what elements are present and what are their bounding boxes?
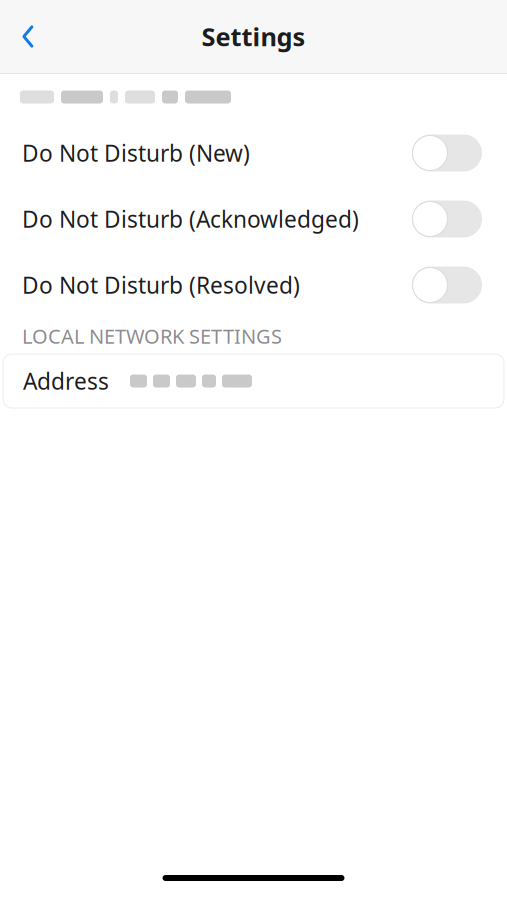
button[interactable]: Address: [3, 354, 504, 408]
button[interactable]: Back: [0, 8, 56, 64]
staticText: Do Not Disturb (New): [22, 138, 250, 168]
staticText: Do Not Disturb (Acknowledged): [22, 204, 359, 234]
staticText: Do Not Disturb (Resolved): [22, 270, 300, 300]
button[interactable]: Do Not Disturb (New): [0, 120, 507, 186]
staticText: Settings: [201, 20, 305, 53]
staticText: LOCAL NETWORK SETTINGS: [22, 323, 282, 349]
button[interactable]: Do Not Disturb (Resolved): [0, 252, 507, 318]
button[interactable]: Do Not Disturb (Acknowledged): [0, 186, 507, 252]
staticText: Address: [23, 366, 109, 396]
